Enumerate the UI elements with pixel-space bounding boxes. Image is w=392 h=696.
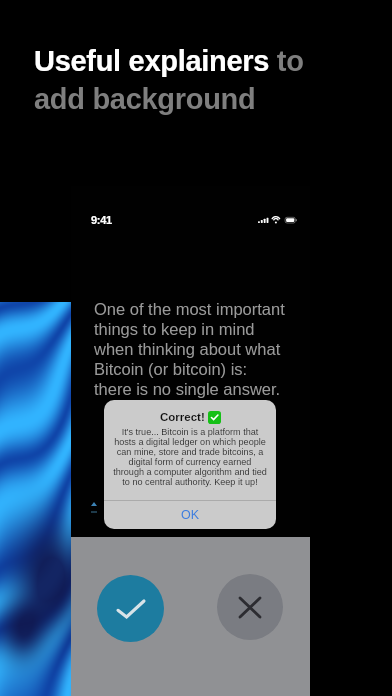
staticText: Correct! — [160, 411, 205, 424]
staticText: One of the most important things to keep… — [94, 300, 285, 399]
button[interactable]: Correct answer — [97, 575, 164, 642]
staticText: 9:41 — [91, 214, 112, 226]
staticText: OK — [181, 508, 200, 522]
staticText: Useful explainers to add background — [34, 45, 334, 116]
button[interactable]: Wrong answer — [217, 574, 283, 640]
staticText: It's true... Bitcoin is a platform that … — [104, 427, 276, 487]
button[interactable]: OK — [104, 500, 276, 529]
